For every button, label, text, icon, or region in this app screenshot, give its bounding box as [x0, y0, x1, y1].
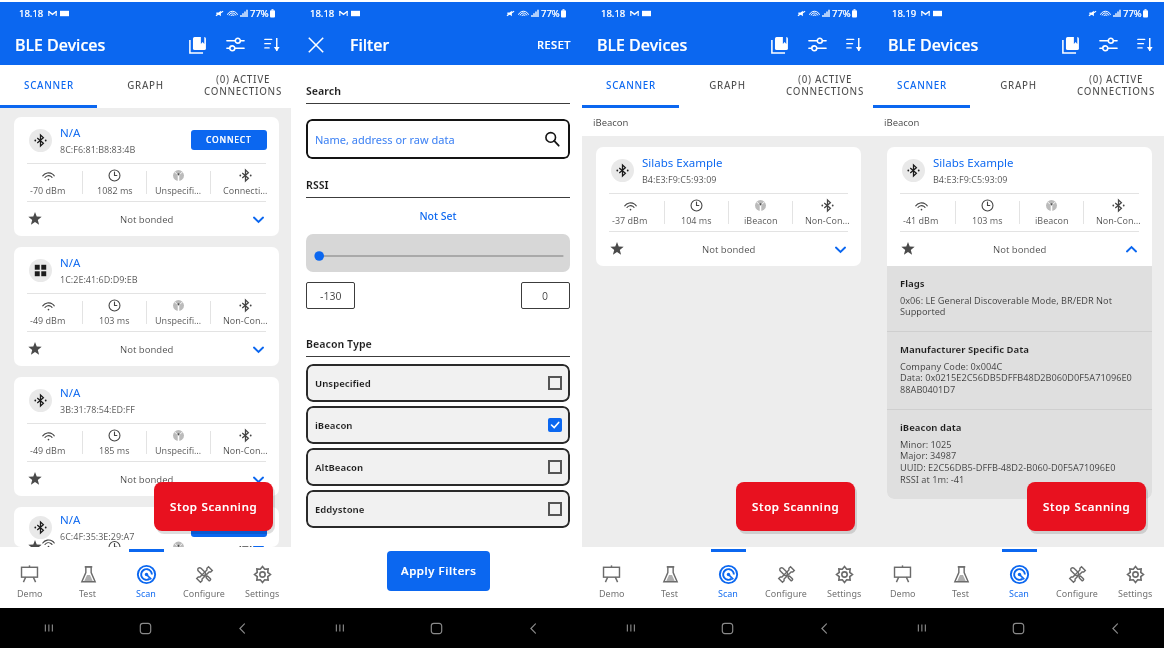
staticText: Scan [1009, 587, 1029, 599]
staticText: Not bonded [120, 343, 174, 356]
button[interactable]: CONNECT [191, 130, 267, 150]
button[interactable]: CONNECT [191, 517, 267, 537]
staticText: 77% [250, 7, 269, 20]
staticText: Test [661, 587, 679, 599]
button[interactable]: Settings [1106, 556, 1164, 608]
button[interactable]: Apply Filters [387, 551, 490, 591]
button[interactable]: Filter [216, 24, 254, 65]
button[interactable]: Not bonded [28, 462, 265, 496]
staticText: 77% [541, 7, 560, 20]
staticText: Eddystone [315, 503, 365, 516]
staticText: Unspecifi… [155, 444, 202, 456]
button[interactable]: Stop Scanning [1027, 482, 1146, 531]
button[interactable]: Demo [873, 556, 932, 608]
staticText: 77% [832, 7, 851, 20]
button[interactable]: Demo [0, 556, 59, 608]
button[interactable]: Name, address or raw data [306, 119, 570, 159]
button[interactable]: -130 [306, 282, 355, 309]
staticText: Name, address or raw data [315, 132, 455, 147]
staticText: N/A [60, 385, 81, 401]
button[interactable]: Test [59, 556, 117, 608]
button[interactable]: Sort [836, 24, 872, 65]
button[interactable]: Filter [798, 24, 836, 65]
button[interactable]: Test [932, 556, 990, 608]
button[interactable]: Stop Scanning [154, 482, 273, 531]
staticText: 18.18 [601, 7, 626, 20]
button[interactable] [306, 234, 570, 272]
button[interactable]: SCANNER [582, 65, 679, 105]
button[interactable]: Scan [990, 556, 1048, 608]
button[interactable]: Saved devices [1052, 24, 1089, 65]
staticText: SCANNER [606, 79, 656, 92]
button[interactable]: SCANNER [0, 65, 97, 105]
staticText: N/A [60, 125, 81, 141]
button[interactable]: Configure [757, 556, 815, 608]
button[interactable]: Stop Scanning [736, 482, 855, 531]
button[interactable]: Eddystone [306, 490, 570, 528]
button[interactable]: N/A [14, 117, 279, 236]
staticText: iBeacon [744, 214, 778, 226]
button[interactable]: Demo [582, 556, 641, 608]
staticText: iBeacon [593, 116, 629, 129]
button[interactable]: N/A [14, 377, 279, 496]
staticText: GRAPH [127, 79, 164, 92]
staticText: 8C:F6:81:B8:83:4B [60, 143, 136, 155]
staticText: 77% [1123, 7, 1142, 20]
staticText: 1082 ms [97, 184, 133, 196]
staticText: Non-Con… [805, 214, 850, 226]
button[interactable]: AltBeacon [306, 448, 570, 486]
staticText: 185 ms [99, 444, 130, 456]
button[interactable]: N/A [14, 507, 279, 547]
button[interactable]: Test [641, 556, 699, 608]
button[interactable]: Saved devices [761, 24, 798, 65]
staticText: 0x06: LE General Discoverable Mode, BR/E… [900, 294, 1112, 318]
staticText: iBeacon [1035, 214, 1069, 226]
button[interactable]: Silabs Example [596, 147, 861, 266]
button[interactable]: Not bonded [28, 202, 265, 236]
button[interactable]: (0) ACTIVE CONNECTIONS [194, 65, 291, 105]
button[interactable]: Settings [815, 556, 873, 608]
button[interactable]: (0) ACTIVE CONNECTIONS [776, 65, 873, 105]
staticText: GRAPH [709, 79, 746, 92]
button[interactable]: Not bonded [28, 332, 265, 366]
button[interactable]: Sort [254, 24, 290, 65]
button[interactable]: GRAPH [970, 65, 1067, 105]
button[interactable]: Sort [1127, 24, 1163, 65]
staticText: iBeacon data [900, 421, 962, 434]
button[interactable]: Configure [175, 556, 233, 608]
button[interactable]: Close [303, 24, 329, 65]
button[interactable]: N/A [14, 247, 279, 366]
button[interactable]: Not bonded [610, 232, 847, 266]
staticText: Configure [765, 587, 807, 599]
button[interactable]: SCANNER [873, 65, 970, 105]
button[interactable]: (0) ACTIVE CONNECTIONS [1067, 65, 1164, 105]
staticText: -49 dBm [30, 314, 66, 326]
staticText: Unspecifi… [155, 314, 202, 326]
button[interactable]: Scan [699, 556, 757, 608]
button[interactable]: Saved devices [179, 24, 216, 65]
button[interactable]: iBeacon [306, 406, 570, 444]
staticText: Not bonded [993, 243, 1047, 256]
staticText: Beacon Type [306, 337, 372, 351]
button[interactable]: Unspecified [306, 364, 570, 402]
button[interactable]: Filter [1089, 24, 1127, 65]
staticText: B4:E3:F9:C5:93:09 [933, 173, 1008, 185]
button[interactable]: GRAPH [679, 65, 776, 105]
button[interactable]: RESET [535, 24, 573, 65]
staticText: Not bonded [120, 213, 174, 226]
button[interactable]: Configure [1048, 556, 1106, 608]
button[interactable]: 0 [521, 282, 570, 309]
staticText: -49 dBm [30, 444, 66, 456]
button[interactable]: GRAPH [97, 65, 194, 105]
button[interactable]: Settings [233, 556, 291, 608]
staticText: iBeacon [315, 419, 353, 432]
staticText: 1C:2E:41:6D:D9:EB [60, 273, 138, 285]
button[interactable]: Silabs Example [887, 147, 1152, 499]
button[interactable]: Scan [117, 556, 175, 608]
staticText: Not Set [306, 209, 570, 223]
staticText: B4:E3:F9:C5:93:09 [642, 173, 717, 185]
button[interactable]: Not bonded [901, 232, 1138, 266]
staticText: (0) ACTIVE CONNECTIONS [204, 73, 282, 98]
staticText: Non-Con… [223, 444, 268, 456]
staticText: Apply Filters [401, 563, 477, 579]
